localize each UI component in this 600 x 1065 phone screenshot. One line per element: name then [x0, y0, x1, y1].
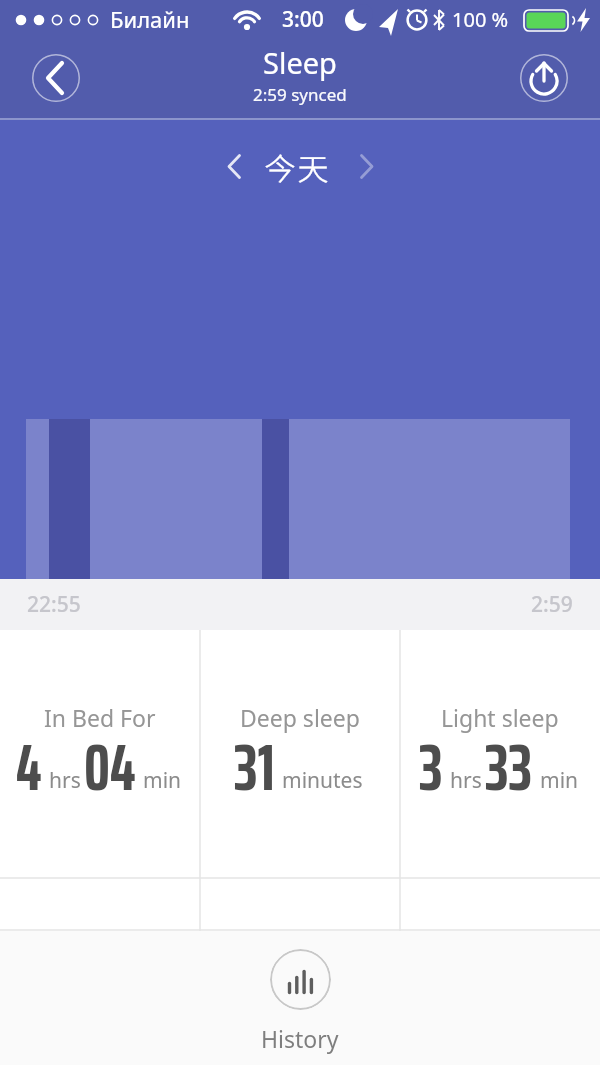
- staticText: 2:59 synced: [253, 83, 347, 106]
- button[interactable]: History: [261, 949, 339, 1054]
- staticText: 31: [234, 716, 275, 818]
- button[interactable]: [520, 54, 568, 102]
- staticText: 04: [84, 716, 136, 818]
- staticText: 100 %: [452, 6, 509, 33]
- staticText: hrs: [450, 766, 482, 795]
- button[interactable]: Deep sleep: [200, 630, 400, 878]
- staticText: 3:00: [282, 5, 324, 34]
- staticText: 4: [16, 716, 42, 818]
- staticText: In Bed For: [44, 702, 156, 733]
- staticText: 33: [485, 716, 533, 818]
- staticText: 2:59: [531, 590, 573, 619]
- staticText: min: [540, 766, 579, 795]
- button[interactable]: [32, 54, 80, 102]
- staticText: History: [261, 1023, 339, 1054]
- button[interactable]: 今天: [226, 145, 375, 188]
- staticText: hrs: [49, 766, 81, 795]
- staticText: Sleep: [263, 43, 337, 82]
- button[interactable]: In Bed For: [0, 630, 200, 878]
- staticText: 22:55: [27, 590, 81, 619]
- button[interactable]: Light sleep: [400, 630, 600, 878]
- staticText: Билайн: [110, 4, 190, 34]
- staticText: 3: [419, 716, 443, 818]
- staticText: 今天: [265, 145, 331, 188]
- staticText: Light sleep: [441, 702, 559, 733]
- staticText: minutes: [282, 766, 363, 795]
- staticText: min: [143, 766, 182, 795]
- staticText: Deep sleep: [240, 702, 360, 733]
